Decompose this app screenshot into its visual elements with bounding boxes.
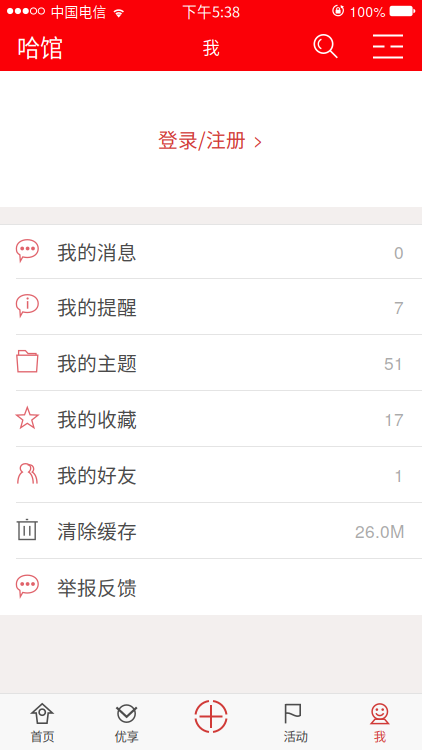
button[interactable]: 我的收藏 (0, 391, 422, 447)
staticText: 我的提醒 (57, 292, 137, 321)
button[interactable]: 我的主题 (0, 335, 422, 391)
button[interactable]: 举报反馈 (0, 559, 422, 615)
button[interactable]: Menu (362, 22, 414, 71)
button[interactable]: 优享 (84, 694, 169, 750)
staticText: 我 (374, 727, 386, 745)
staticText: 我的消息 (57, 237, 137, 266)
button[interactable]: 活动 (253, 694, 338, 750)
staticText: 举报反馈 (57, 573, 137, 601)
staticText: 哈馆 (17, 30, 63, 63)
staticText: 17 (384, 406, 404, 431)
button[interactable]: Search (302, 22, 362, 71)
staticText: 我的收藏 (57, 404, 137, 433)
staticText: 登录/注册 (158, 125, 246, 153)
staticText: 活动 (283, 727, 307, 745)
staticText: 优享 (115, 727, 139, 745)
staticText: 清除缓存 (57, 516, 137, 545)
staticText: 首页 (30, 727, 54, 745)
staticText: 下午5:38 (182, 0, 240, 22)
button[interactable]: 我的提醒 (0, 279, 422, 335)
staticText: 26.0M (355, 518, 404, 543)
button[interactable]: Post (169, 694, 253, 750)
staticText: 我的主题 (57, 348, 137, 377)
button[interactable]: 清除缓存 (0, 503, 422, 559)
button[interactable]: 登录/注册 (0, 113, 422, 165)
staticText: 100% (350, 1, 386, 21)
button[interactable]: 我的消息 (0, 225, 422, 279)
button[interactable]: 我的好友 (0, 447, 422, 503)
staticText: 0 (394, 239, 404, 264)
staticText: 7 (394, 294, 404, 319)
button[interactable]: 首页 (0, 694, 84, 750)
button[interactable]: 我 (338, 694, 422, 750)
staticText: 51 (384, 350, 404, 375)
staticText: 中国电信 (50, 1, 106, 21)
staticText: 我的好友 (57, 460, 137, 489)
staticText: 我 (202, 34, 219, 59)
staticText: > (253, 126, 264, 152)
staticText: 1 (394, 462, 404, 487)
